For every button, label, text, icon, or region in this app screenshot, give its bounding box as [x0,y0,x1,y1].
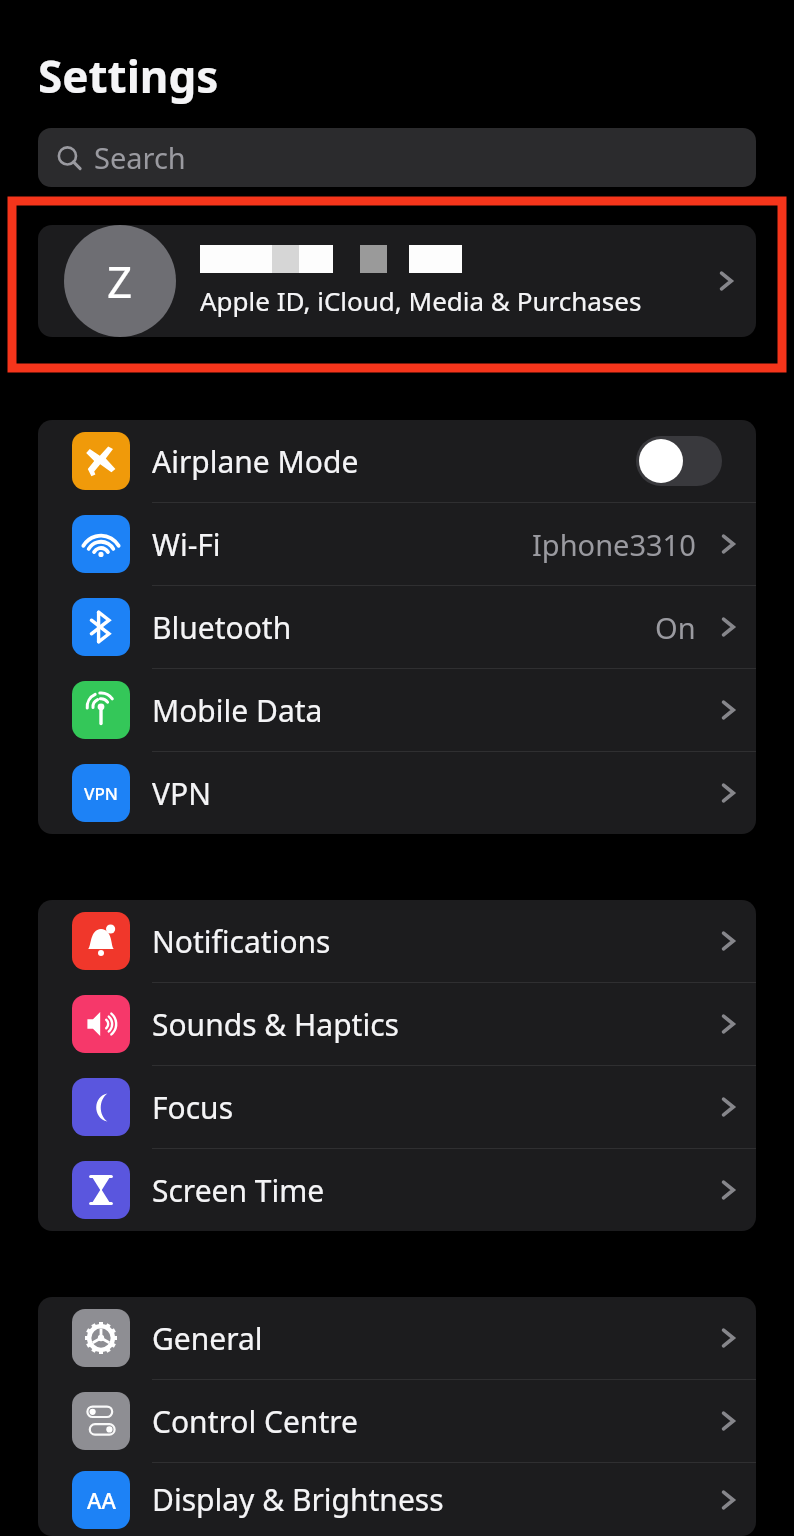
staticText: Iphone3310 [532,525,696,564]
staticText: VPN [152,773,211,814]
button[interactable]: AA [38,1463,756,1536]
button[interactable]: Search [38,128,756,187]
button[interactable]: VPN [38,752,756,834]
staticText: Settings [38,46,219,106]
button[interactable]: Sounds & Haptics [38,983,756,1065]
staticText: Z [107,251,133,311]
button[interactable]: Bluetooth [38,586,756,668]
button[interactable]: Wi-Fi [38,503,756,585]
staticText: Wi-Fi [152,524,221,565]
staticText: Bluetooth [152,607,292,648]
button[interactable]: General [38,1297,756,1379]
button[interactable]: Airplane Mode [38,420,756,502]
button[interactable]: Screen Time [38,1149,756,1231]
button[interactable]: Airplane Mode toggle [636,436,722,486]
staticText: Airplane Mode [152,441,359,482]
staticText: Mobile Data [152,690,323,731]
staticText: On [655,608,696,647]
other: Apple ID details [700,225,756,337]
staticText: General [152,1318,263,1359]
staticText: AA [87,1485,116,1515]
staticText: Apple ID, iCloud, Media & Purchases [200,283,642,318]
staticText: Display & Brightness [152,1479,444,1520]
staticText: VPN [84,782,119,805]
button[interactable]: Focus [38,1066,756,1148]
staticText: Control Centre [152,1401,358,1442]
button[interactable]: Notifications [38,900,756,982]
button[interactable]: Z [38,225,756,337]
staticText: Notifications [152,921,331,962]
button[interactable]: Control Centre [38,1380,756,1462]
staticText: Search [94,138,186,177]
staticText: Screen Time [152,1170,325,1211]
button[interactable]: Mobile Data [38,669,756,751]
staticText: Focus [152,1087,234,1128]
staticText: Sounds & Haptics [152,1004,399,1045]
